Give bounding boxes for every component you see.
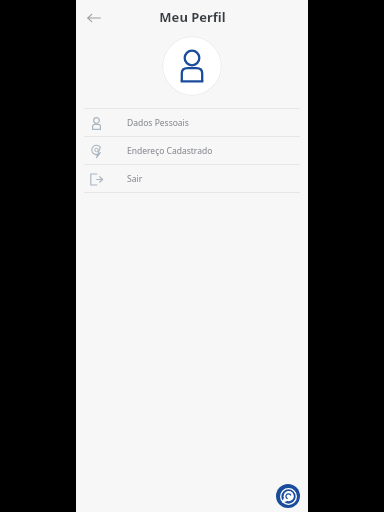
staticText: Endereço Cadastrado: [127, 145, 213, 157]
staticText: Sair: [127, 173, 143, 185]
button[interactable]: Voltar: [80, 4, 108, 32]
button[interactable]: Sair: [76, 165, 308, 192]
button[interactable]: WhatsApp: [276, 484, 300, 508]
button[interactable]: Endereço Cadastrado: [76, 137, 308, 164]
staticText: Dados Pessoais: [127, 117, 189, 129]
button[interactable]: Dados Pessoais: [76, 109, 308, 136]
staticText: Meu Perfil: [159, 8, 226, 26]
